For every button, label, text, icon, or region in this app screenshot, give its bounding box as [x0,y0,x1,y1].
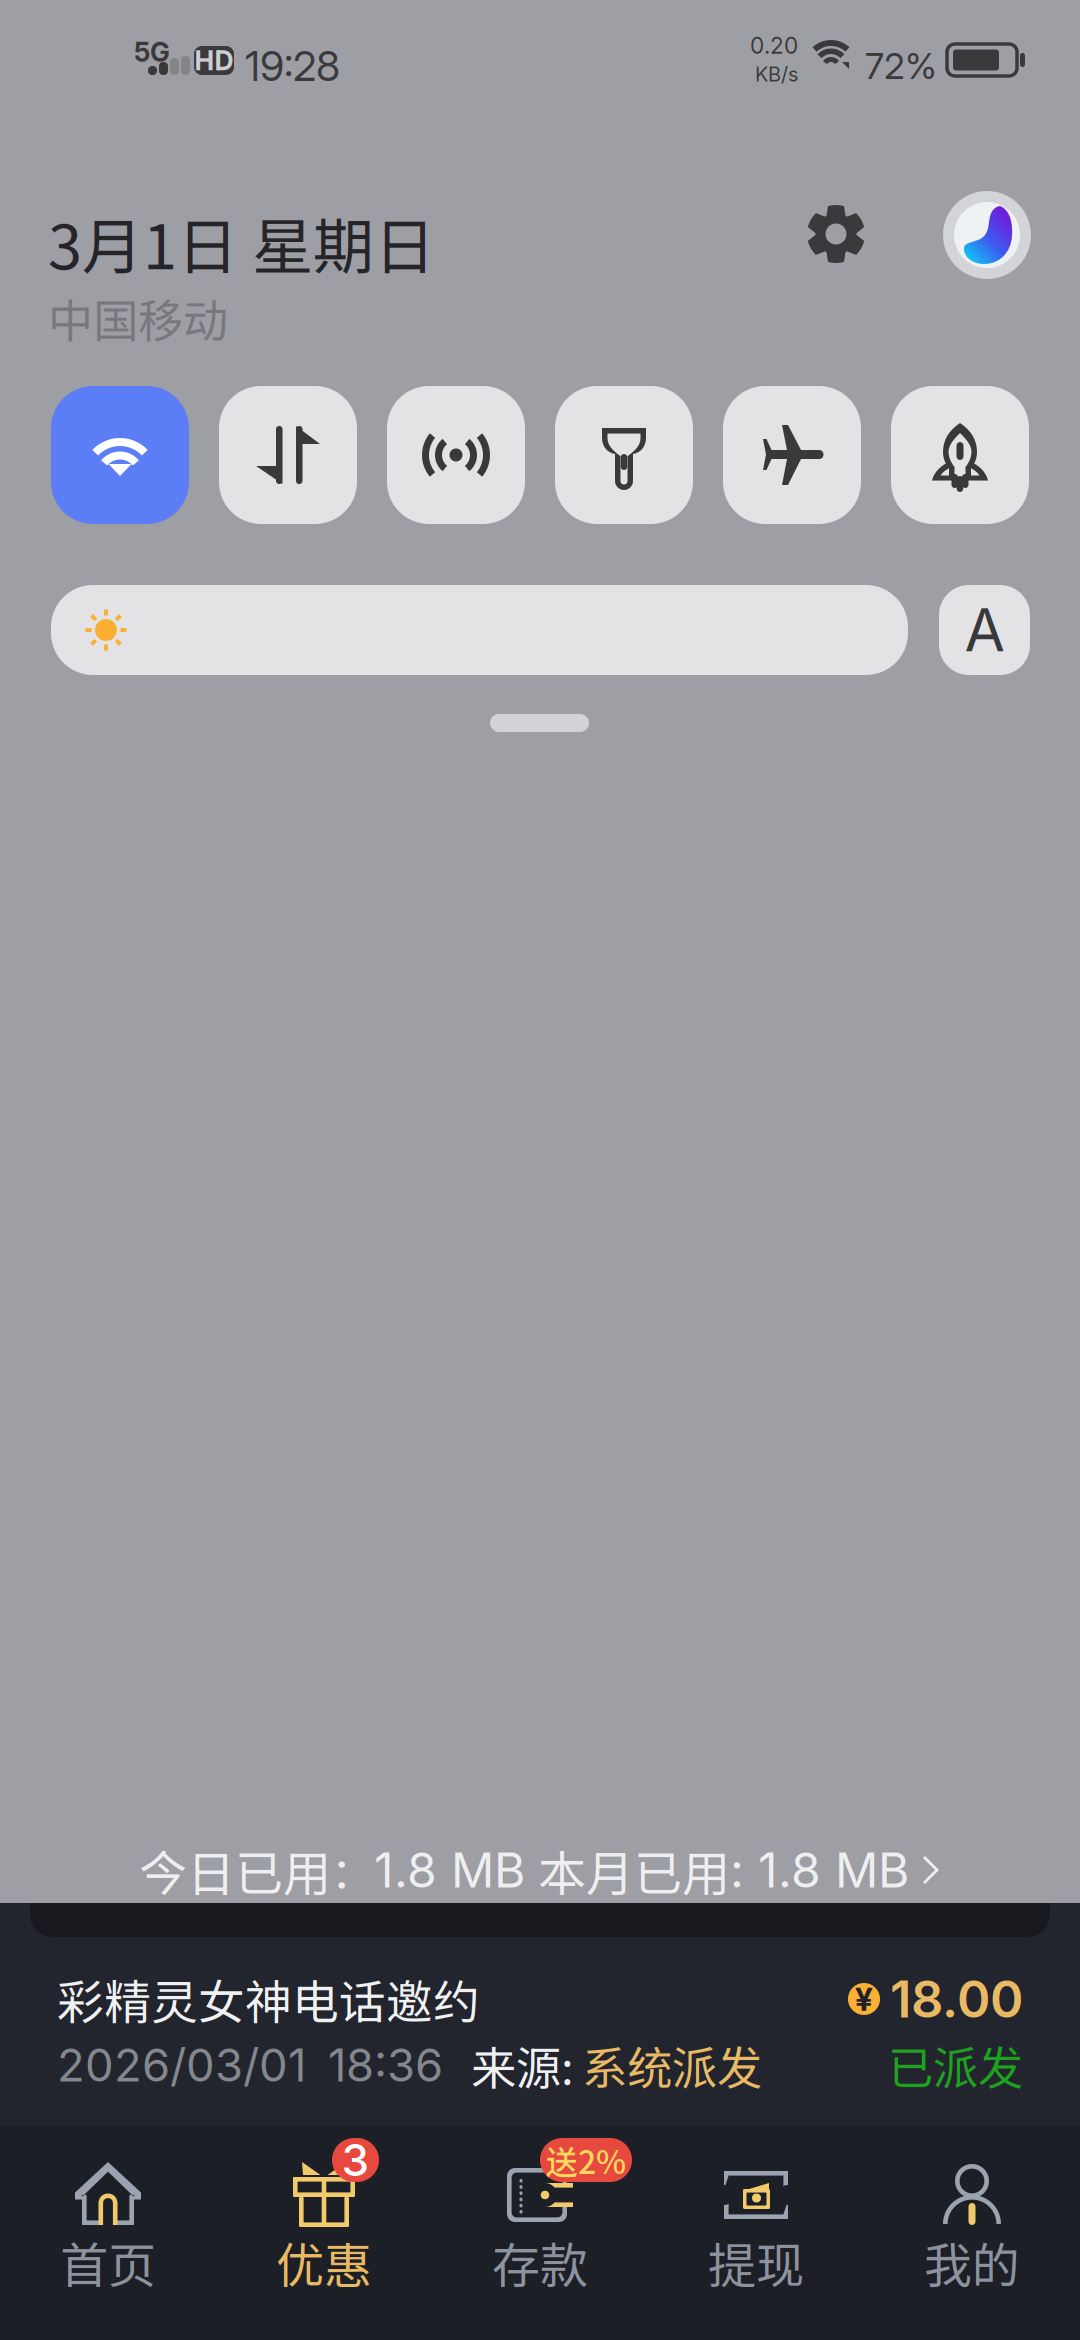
button[interactable]: 智慧助手 [941,189,1033,281]
staticText: ： [331,1839,374,1901]
button[interactable]: 存款 [432,2126,648,2340]
button[interactable]: 我的 [864,2126,1080,2340]
staticText: 2026/03/01 [57,2038,306,2092]
staticText: 3月1日 星期日 [48,198,435,287]
button[interactable]: 手电筒 [555,386,693,524]
staticText: A [964,594,1004,665]
staticText: : [730,1841,758,1899]
staticText: 首页 [60,2227,156,2297]
staticText: HD [194,44,233,77]
staticText: 中国移动 [48,285,228,351]
button[interactable]: 个人热点 [387,386,525,524]
staticText: 今日已用 [139,1835,331,1905]
button[interactable]: 一键加速 [891,386,1029,524]
staticText: 系统派发 [582,2032,762,2098]
staticText: 5G [134,36,170,68]
staticText: 本月已用 [538,1835,730,1905]
staticText: 19:28 [245,41,340,91]
button[interactable]: 设置 [807,205,865,263]
button[interactable]: 自动亮度 [939,585,1030,675]
button[interactable]: 优惠 [216,2126,432,2340]
staticText: 彩精灵女神电话邀约 [57,1965,480,2033]
staticText: 72% [865,44,937,88]
staticText: 0.20 [750,32,798,59]
staticText: 来源: [471,2032,574,2098]
button[interactable]: 无线局域网 [51,386,189,524]
button[interactable]: 提现 [648,2126,864,2340]
staticText: ¥ [855,1980,873,2018]
button[interactable]: 首页 [0,2126,216,2340]
staticText: 存款 [492,2227,588,2297]
staticText: 提现 [708,2227,804,2297]
staticText: 3 [341,2133,369,2187]
staticText: KB/s [755,62,798,86]
staticText: 1.8 MB [758,1841,909,1899]
staticText: 18:36 [328,2038,443,2092]
staticText: 我的 [924,2227,1020,2297]
staticText: 优惠 [276,2227,372,2297]
button[interactable]: 飞行模式 [723,386,861,524]
staticText: 已派发 [888,2032,1023,2098]
button[interactable]: 今日已用 [0,1840,1080,1900]
button[interactable]: 彩精灵女神电话邀约 [0,1961,1080,2101]
button[interactable]: 数据流量 [219,386,357,524]
staticText: 1.8 MB [374,1841,525,1899]
staticText: 送2% [546,2137,626,2183]
staticText: 18.00 [890,1968,1023,2030]
